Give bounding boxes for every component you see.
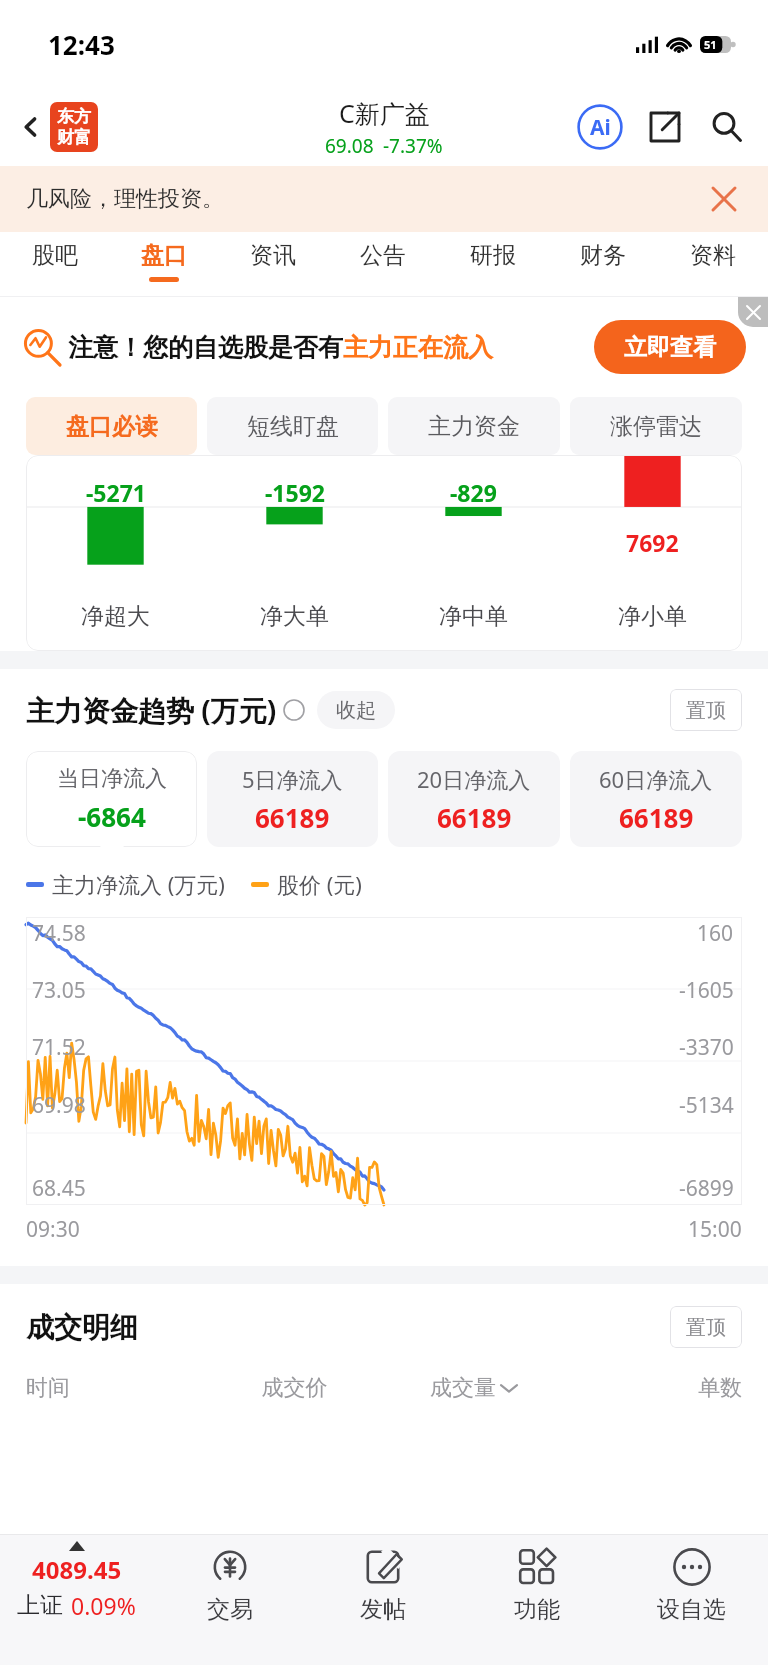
staticText: 净超大 [81, 602, 150, 631]
staticText: 资料 [690, 241, 736, 270]
button[interactable]: 交易 [153, 1535, 306, 1665]
staticText: 涨停雷达 [610, 412, 702, 441]
button[interactable]: 5日净流入 [207, 751, 378, 847]
staticText: 69.98 [32, 1091, 86, 1120]
button[interactable]: 涨停雷达 [570, 397, 742, 455]
staticText: -829 [450, 477, 497, 508]
button[interactable]: 财务 [548, 232, 658, 296]
staticText: 公告 [360, 241, 406, 270]
staticText: 几风险，理性投资。 [26, 185, 224, 213]
button[interactable]: 置顶 [670, 689, 742, 731]
staticText: 5日净流入 [242, 764, 343, 794]
staticText: 7692 [626, 527, 679, 558]
staticText: -5271 [86, 477, 146, 508]
button[interactable]: 东方 [50, 102, 98, 152]
staticText: 66189 [619, 800, 694, 835]
staticText: 净小单 [618, 602, 687, 631]
staticText: 净中单 [439, 602, 508, 631]
button[interactable]: Share [640, 102, 690, 152]
button[interactable]: 功能 [460, 1535, 614, 1665]
button[interactable]: 短线盯盘 [207, 397, 378, 455]
button[interactable]: 设自选 [614, 1535, 768, 1665]
staticText: 73.05 [32, 976, 86, 1005]
staticText: 置顶 [686, 1315, 726, 1340]
staticText: 资讯 [250, 241, 296, 270]
staticText: 69.08 [325, 133, 374, 159]
button[interactable]: Back [10, 106, 52, 148]
button[interactable]: 20日净流入 [388, 751, 560, 847]
staticText: 60日净流入 [599, 764, 713, 794]
button[interactable]: -5271 [26, 455, 742, 651]
staticText: 注意！您的自选股是否有 [68, 332, 343, 363]
button[interactable]: 盘口 [109, 232, 218, 296]
staticText: 主力净流入 (万元) [52, 869, 225, 899]
staticText: 当日净流入 [57, 765, 167, 793]
staticText: 东方 [57, 106, 91, 127]
staticText: C新广益 [339, 96, 430, 130]
staticText: 股价 (元) [277, 869, 362, 899]
staticText: 成交量 [430, 1374, 496, 1402]
staticText: 立即查看 [624, 333, 716, 362]
button[interactable]: Close ad [738, 297, 768, 327]
staticText: -7.37% [383, 133, 443, 159]
button[interactable]: Close [702, 177, 746, 221]
button[interactable]: 收起 [317, 691, 395, 729]
staticText: Ai [590, 113, 611, 142]
staticText: 74.58 [32, 919, 86, 948]
staticText: 4089.45 [32, 1553, 122, 1586]
staticText: 51 [704, 37, 717, 52]
button[interactable]: 盘口必读 [26, 397, 197, 455]
staticText: 交易 [207, 1595, 253, 1624]
button[interactable]: 置顶 [670, 1306, 742, 1348]
staticText: 主力资金趋势 (万元) [26, 691, 277, 729]
staticText: 财务 [580, 241, 626, 270]
button[interactable]: 资讯 [218, 232, 328, 296]
staticText: 160 [697, 919, 734, 948]
button[interactable]: 资料 [658, 232, 768, 296]
staticText: 发帖 [360, 1595, 406, 1624]
staticText: 净大单 [260, 602, 329, 631]
staticText: 成交价 [205, 1374, 384, 1402]
button[interactable]: 公告 [328, 232, 438, 296]
staticText: 12:43 [48, 27, 115, 62]
staticText: 盘口 [141, 241, 187, 270]
staticText: -6899 [679, 1174, 734, 1203]
button[interactable]: 发帖 [306, 1535, 460, 1665]
staticText: 时间 [26, 1374, 205, 1402]
staticText: -3370 [679, 1033, 734, 1062]
staticText: 置顶 [686, 698, 726, 723]
staticText: 主力正在流入 [343, 332, 493, 363]
staticText: 上证 [17, 1591, 63, 1620]
button[interactable]: 当日净流入 [26, 751, 197, 847]
staticText: 71.52 [32, 1033, 86, 1062]
button[interactable]: 4089.45 [0, 1535, 153, 1665]
staticText: -5134 [679, 1091, 734, 1120]
staticText: 66189 [255, 800, 330, 835]
staticText: 成交明细 [26, 1310, 138, 1345]
button[interactable]: AI [574, 101, 626, 153]
staticText: 68.45 [32, 1174, 86, 1203]
staticText: 66189 [437, 800, 512, 835]
staticText: 财富 [57, 127, 91, 148]
button[interactable]: 60日净流入 [570, 751, 742, 847]
staticText: -1592 [265, 477, 325, 508]
button[interactable]: 研报 [438, 232, 548, 296]
staticText: 15:00 [688, 1215, 742, 1244]
button[interactable]: 立即查看 [594, 320, 746, 374]
staticText: 设自选 [657, 1595, 726, 1624]
staticText: 主力资金 [428, 412, 520, 441]
button[interactable]: 主力资金 [388, 397, 560, 455]
staticText: 股吧 [32, 241, 78, 270]
button[interactable]: 股吧 [0, 232, 109, 296]
staticText: 研报 [470, 241, 516, 270]
staticText: 09:30 [26, 1215, 80, 1244]
staticText: 单数 [563, 1374, 742, 1402]
staticText: 收起 [336, 698, 376, 723]
staticText: 短线盯盘 [247, 412, 339, 441]
staticText: -1605 [679, 976, 734, 1005]
button[interactable]: Search [702, 102, 752, 152]
staticText: -6864 [78, 799, 146, 834]
staticText: 盘口必读 [66, 412, 158, 441]
staticText: 20日净流入 [417, 764, 531, 794]
staticText: 功能 [514, 1595, 560, 1624]
